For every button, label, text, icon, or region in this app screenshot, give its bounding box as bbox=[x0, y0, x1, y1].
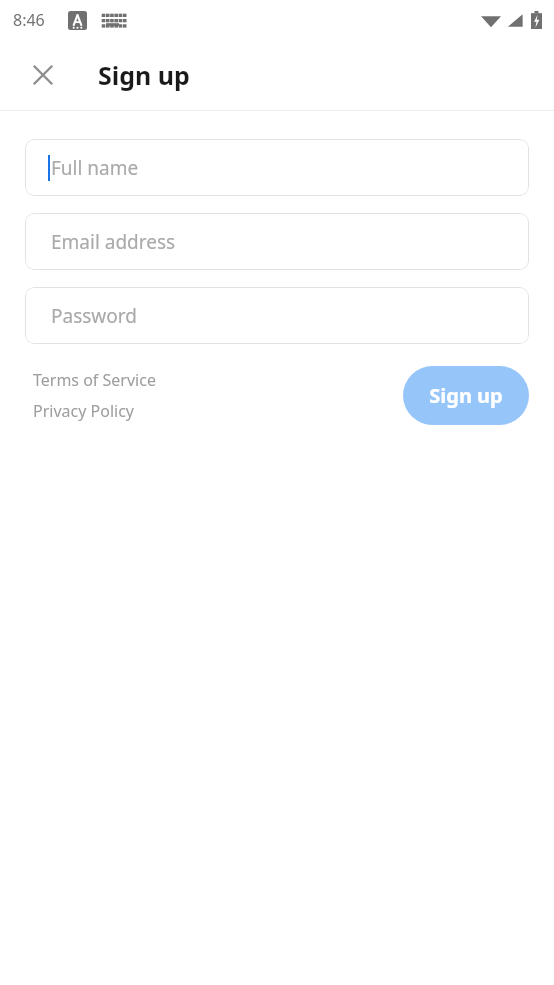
button[interactable]: Privacy Policy bbox=[33, 400, 134, 422]
staticText: 8:46 bbox=[13, 9, 45, 31]
button[interactable]: Full name bbox=[25, 139, 529, 196]
button[interactable]: Terms of Service bbox=[33, 369, 156, 391]
staticText: Email address bbox=[51, 229, 176, 255]
button[interactable]: Email address bbox=[25, 213, 529, 270]
staticText: Terms of Service bbox=[33, 369, 156, 391]
staticText: Sign up bbox=[429, 382, 503, 409]
staticText: Privacy Policy bbox=[33, 400, 134, 422]
button[interactable]: Sign up bbox=[403, 366, 529, 425]
staticText: Full name bbox=[51, 155, 139, 181]
button[interactable]: Password bbox=[25, 287, 529, 344]
button[interactable]: Close bbox=[19, 51, 67, 99]
staticText: Sign up bbox=[98, 58, 190, 92]
staticText: Password bbox=[51, 303, 137, 329]
